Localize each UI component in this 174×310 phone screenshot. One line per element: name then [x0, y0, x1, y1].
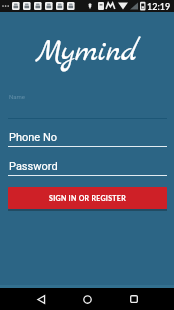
staticText: Password — [9, 160, 58, 173]
staticText: Mymind — [0, 33, 174, 72]
button[interactable]: Back — [30, 288, 52, 310]
button[interactable]: Home — [76, 288, 98, 310]
staticText: Phone No — [9, 131, 58, 144]
button[interactable]: Name — [8, 100, 167, 119]
button[interactable]: Phone No — [8, 124, 167, 147]
staticText: 12:19 — [147, 1, 171, 12]
button[interactable]: Password — [8, 153, 167, 176]
staticText: Name — [9, 93, 25, 100]
button[interactable]: Recent apps — [123, 288, 145, 310]
staticText: SIGN IN OR REGISTER — [49, 194, 126, 202]
button[interactable]: SIGN IN OR REGISTER — [8, 187, 167, 209]
